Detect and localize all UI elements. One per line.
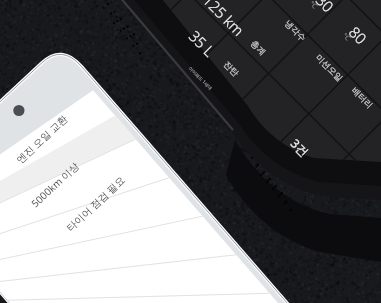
button[interactable]: 아이패드 1세대 bbox=[188, 65, 214, 91]
button[interactable]: 잔탄 bbox=[221, 59, 241, 79]
button[interactable]: 30 bbox=[312, 0, 339, 17]
staticText: 엔진 오일 교환 bbox=[13, 111, 71, 166]
button[interactable]: 냉각수 bbox=[282, 18, 308, 44]
staticText: 35 L bbox=[185, 26, 219, 61]
button[interactable]: 80 bbox=[345, 22, 372, 49]
button[interactable]: °C bbox=[340, 31, 353, 44]
button[interactable]: 타이어 점검 필요 bbox=[63, 172, 128, 234]
staticText: 배터리 bbox=[349, 85, 375, 111]
staticText: 아이패드 1세대 bbox=[188, 65, 214, 91]
button[interactable]: 35 L bbox=[185, 26, 219, 61]
staticText: °C bbox=[307, 0, 320, 12]
staticText: 미션오일 bbox=[313, 52, 345, 84]
staticText: 총계 bbox=[248, 38, 268, 58]
staticText: °C bbox=[340, 31, 353, 44]
staticText: 타이어 점검 필요 bbox=[63, 172, 128, 234]
staticText: 5000km 이상 bbox=[28, 158, 82, 210]
button[interactable]: °C bbox=[307, 0, 320, 12]
button[interactable]: 5000km 이상 bbox=[28, 158, 82, 210]
staticText: 잔탄 bbox=[221, 59, 241, 79]
button[interactable]: 미션오일 bbox=[313, 52, 345, 84]
button[interactable]: 총계 bbox=[248, 38, 268, 58]
staticText: 125 km bbox=[199, 0, 249, 40]
staticText: 80 bbox=[345, 22, 372, 49]
button[interactable]: 125 km bbox=[199, 0, 249, 40]
staticText: 3건 bbox=[288, 135, 312, 160]
button[interactable]: 엔진 오일 교환 bbox=[13, 111, 71, 166]
button[interactable]: 배터리 bbox=[349, 85, 375, 111]
staticText: 냉각수 bbox=[282, 18, 308, 44]
staticText: 30 bbox=[312, 0, 339, 17]
button[interactable]: 3건 bbox=[288, 135, 312, 160]
